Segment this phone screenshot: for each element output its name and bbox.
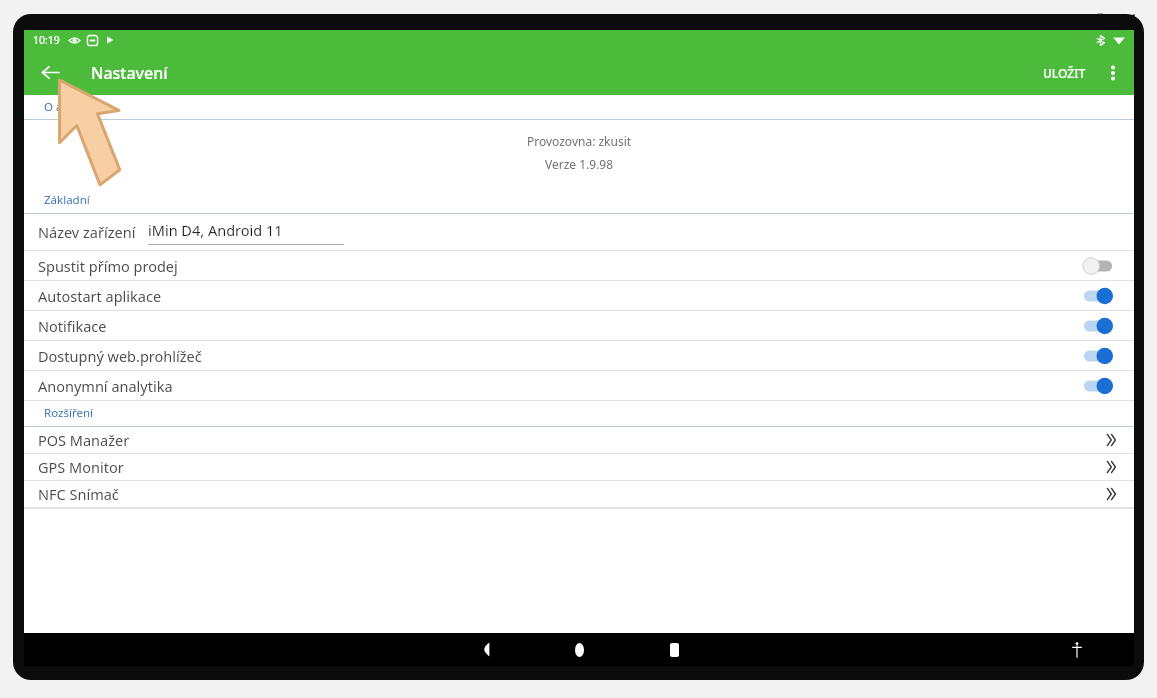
button[interactable]: GPS Monitor xyxy=(24,454,1134,480)
staticText: Základní xyxy=(44,192,90,208)
button[interactable]: Open in new window xyxy=(1082,8,1108,34)
staticText: Verze 1.9.98 xyxy=(545,156,614,172)
staticText: iMin D4, Android 11 xyxy=(148,220,283,240)
button[interactable]: Accessibility xyxy=(1060,633,1094,666)
button[interactable]: Close xyxy=(1114,8,1140,34)
staticText: Autostart aplikace xyxy=(38,286,162,306)
staticText: O aplikaci xyxy=(44,99,97,115)
staticText: POS Manažer xyxy=(38,430,130,450)
staticText: Notifikace xyxy=(38,316,107,336)
staticText: GPS Monitor xyxy=(38,457,124,477)
staticText: ULOŽIT xyxy=(1043,65,1086,81)
button[interactable]: ULOŽIT xyxy=(1033,50,1096,95)
button[interactable]: Back xyxy=(32,50,69,95)
button[interactable]: NFC Snímač xyxy=(24,481,1134,507)
staticText: Anonymní analytika xyxy=(38,376,173,396)
button[interactable]: Anonymní analytika xyxy=(24,371,1134,400)
staticText: Provozovna: zkusit xyxy=(527,133,632,149)
staticText: Dostupný web.prohlížeč xyxy=(38,346,202,366)
staticText: Nastavení xyxy=(91,62,168,84)
button[interactable]: iMin D4, Android 11 xyxy=(148,220,344,245)
button[interactable]: POS Manažer xyxy=(24,427,1134,453)
button[interactable]: Home xyxy=(554,633,604,666)
button[interactable]: Spustit přímo prodej xyxy=(24,251,1134,280)
button[interactable]: Back xyxy=(459,633,509,666)
button[interactable]: Recent apps xyxy=(649,633,699,666)
staticText: 10:19 xyxy=(33,33,60,47)
button[interactable]: Dostupný web.prohlížeč xyxy=(24,341,1134,370)
button[interactable]: Autostart aplikace xyxy=(24,281,1134,310)
button[interactable]: More options xyxy=(1096,50,1130,95)
staticText: Rozšíření xyxy=(44,405,93,421)
button[interactable]: Notifikace xyxy=(24,311,1134,340)
staticText: Název zařízení xyxy=(38,222,136,242)
staticText: NFC Snímač xyxy=(38,484,119,504)
staticText: Spustit přímo prodej xyxy=(38,256,178,276)
